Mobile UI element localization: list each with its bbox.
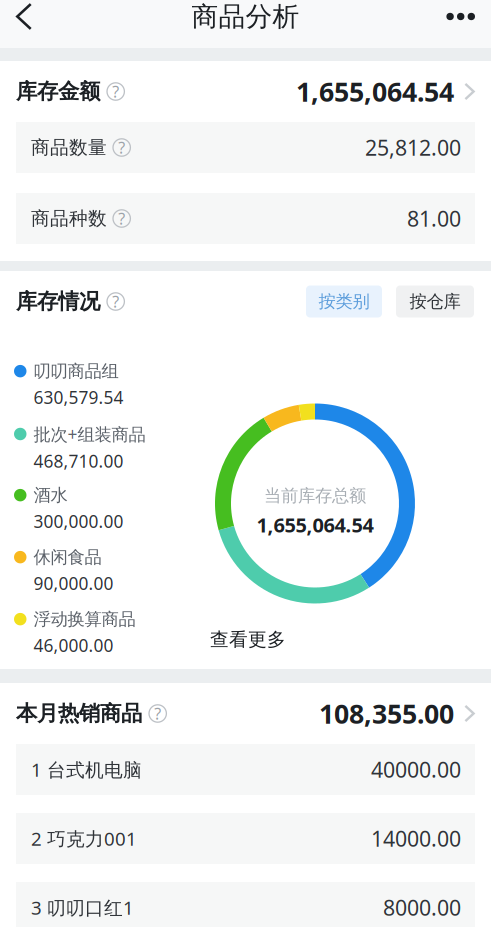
staticText: 1,655,064.54 — [296, 74, 454, 109]
staticText: 40000.00 — [371, 755, 461, 784]
staticText: 81.00 — [407, 204, 461, 233]
button[interactable]: 本月热销商品 — [0, 683, 491, 744]
staticText: 108,355.00 — [319, 696, 454, 731]
staticText: 25,812.00 — [365, 133, 461, 162]
staticText: ? — [112, 81, 119, 102]
button[interactable]: More options — [432, 0, 491, 33]
staticText: 当前库存总额 — [264, 485, 366, 506]
staticText: 酒水 — [33, 484, 67, 506]
staticText: 按仓库 — [409, 291, 460, 312]
staticText: ? — [118, 137, 125, 158]
staticText: 商品种数 — [31, 207, 107, 230]
staticText: 库存情况 — [16, 288, 100, 315]
staticText: 300,000.00 — [33, 510, 123, 533]
staticText: 库存金额 — [16, 78, 100, 105]
staticText: 商品数量 — [31, 136, 107, 159]
staticText: 商品分析 — [191, 0, 299, 33]
staticText: 90,000.00 — [33, 572, 113, 595]
staticText: 2 巧克力001 — [31, 826, 137, 851]
staticText: 468,710.00 — [33, 449, 123, 472]
staticText: 8000.00 — [383, 893, 461, 922]
staticText: 休闲食品 — [33, 546, 101, 568]
button[interactable]: Back — [0, 0, 46, 33]
staticText: 3 叨叨口红1 — [31, 895, 134, 920]
staticText: 630,579.54 — [33, 386, 123, 409]
staticText: 14000.00 — [371, 824, 461, 853]
staticText: ? — [118, 208, 125, 229]
staticText: 1,655,064.54 — [256, 511, 373, 538]
staticText: 本月热销商品 — [16, 700, 142, 727]
staticText: 46,000.00 — [33, 634, 113, 657]
button[interactable]: 库存金额 — [0, 61, 491, 122]
staticText: ? — [154, 703, 161, 724]
staticText: 按类别 — [318, 291, 369, 312]
button[interactable]: 查看更多 — [210, 626, 286, 652]
button[interactable]: 按仓库 — [396, 285, 474, 317]
staticText: 查看更多 — [210, 628, 286, 651]
staticText: ? — [112, 291, 119, 312]
staticText: 批次+组装商品 — [33, 422, 145, 445]
staticText: 1 台式机电脑 — [31, 757, 142, 782]
button[interactable]: 按类别 — [306, 285, 382, 317]
staticText: 浮动换算商品 — [33, 608, 135, 630]
staticText: 叨叨商品组 — [33, 360, 118, 382]
